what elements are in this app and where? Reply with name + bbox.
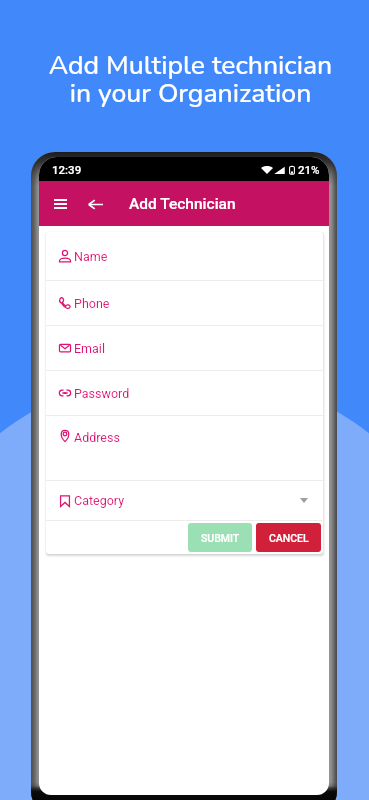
staticText: Name xyxy=(74,249,108,264)
button[interactable]: CANCEL xyxy=(256,523,321,552)
staticText: 12:39 xyxy=(52,163,82,176)
staticText: Email xyxy=(74,341,105,356)
button[interactable]: Back xyxy=(83,192,107,216)
button[interactable]: Email xyxy=(46,326,323,370)
button[interactable]: Name xyxy=(46,232,323,280)
staticText: Add Multiple technician in your Organiza… xyxy=(6,47,369,112)
staticText: 21% xyxy=(298,163,320,176)
button[interactable]: Password xyxy=(46,371,323,415)
staticText: Add Technician xyxy=(129,195,236,213)
staticText: SUBMIT xyxy=(201,532,240,544)
staticText: Password xyxy=(74,386,130,401)
button[interactable]: Phone xyxy=(46,281,323,325)
staticText: CANCEL xyxy=(269,532,309,544)
staticText: Address xyxy=(74,430,120,445)
button[interactable]: Open navigation menu xyxy=(48,192,72,216)
staticText: Phone xyxy=(74,296,110,311)
staticText: Category xyxy=(74,493,125,508)
button[interactable]: Category xyxy=(46,481,323,520)
button[interactable]: Address xyxy=(46,416,323,480)
button[interactable]: SUBMIT xyxy=(188,523,252,552)
